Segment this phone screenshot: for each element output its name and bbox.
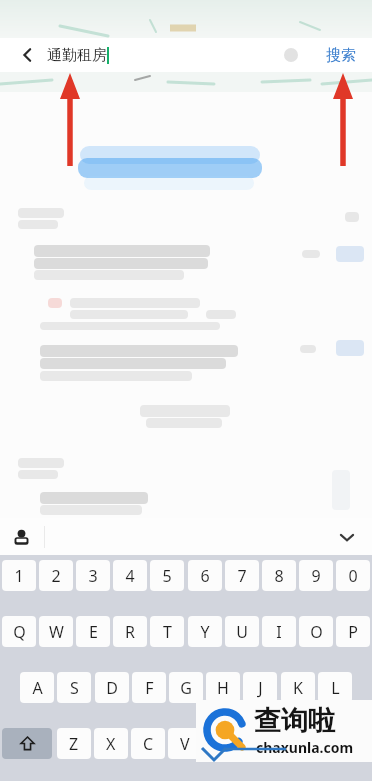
button[interactable]: 搜索 [322, 42, 360, 69]
button[interactable]: J [243, 672, 277, 703]
button[interactable]: R [113, 616, 147, 647]
button[interactable]: C [131, 728, 165, 759]
staticText: M [290, 733, 305, 755]
button[interactable]: B [205, 728, 239, 759]
button[interactable]: 7 [225, 560, 259, 591]
staticText: chaxunla.com [256, 738, 354, 757]
staticText: 0 [348, 565, 358, 587]
staticText: 通勤租房 [47, 46, 107, 65]
staticText: K [293, 677, 303, 699]
staticText: 7 [237, 565, 247, 587]
button[interactable]: 4 [113, 560, 147, 591]
button[interactable]: T [150, 616, 184, 647]
button[interactable]: L [318, 672, 352, 703]
button[interactable]: Back [14, 41, 42, 69]
staticText: 查询啦 [254, 704, 335, 738]
staticText: B [217, 733, 228, 755]
staticText: V [180, 733, 190, 755]
button[interactable]: 3 [76, 560, 110, 591]
button[interactable]: N [243, 728, 277, 759]
staticText: 9 [311, 565, 321, 587]
button[interactable]: M [280, 728, 314, 759]
button[interactable]: I [262, 616, 296, 647]
staticText: 5 [162, 565, 172, 587]
staticText: I [276, 621, 282, 643]
staticText: Y [200, 621, 210, 643]
button[interactable]: 9 [299, 560, 333, 591]
staticText: 4 [125, 565, 135, 587]
button[interactable]: Y [188, 616, 222, 647]
button[interactable]: Backspace [318, 728, 370, 759]
button[interactable]: V [168, 728, 202, 759]
staticText: G [180, 677, 192, 699]
button[interactable]: Shift [2, 728, 52, 759]
staticText: D [106, 677, 118, 699]
staticText: R [125, 621, 135, 643]
staticText: P [348, 621, 358, 643]
button[interactable]: 1 [2, 560, 36, 591]
staticText: N [254, 733, 267, 755]
staticText: W [49, 621, 64, 643]
staticText: 8 [274, 565, 284, 587]
staticText: 2 [51, 565, 61, 587]
staticText: X [106, 733, 116, 755]
staticText: 6 [200, 565, 210, 587]
staticText: C [143, 733, 154, 755]
button[interactable]: 8 [262, 560, 296, 591]
button[interactable]: G [169, 672, 203, 703]
staticText: U [236, 621, 248, 643]
button[interactable]: 2 [39, 560, 73, 591]
button[interactable]: 6 [188, 560, 222, 591]
button[interactable]: U [225, 616, 259, 647]
button[interactable]: D [95, 672, 129, 703]
button[interactable]: E [76, 616, 110, 647]
button[interactable]: Clear text [280, 44, 302, 66]
staticText: 搜索 [326, 46, 356, 65]
staticText: 1 [14, 565, 24, 587]
button[interactable]: W [39, 616, 73, 647]
button[interactable]: F [132, 672, 166, 703]
button[interactable]: Z [57, 728, 91, 759]
staticText: T [163, 621, 172, 643]
button[interactable]: O [299, 616, 333, 647]
staticText: E [89, 621, 98, 643]
button[interactable]: X [94, 728, 128, 759]
button[interactable]: K [281, 672, 315, 703]
button[interactable]: 0 [336, 560, 370, 591]
button[interactable]: Hide keyboard [332, 522, 362, 552]
button[interactable]: Switch input language [8, 524, 34, 550]
staticText: O [310, 621, 323, 643]
staticText: Q [13, 621, 26, 643]
button[interactable]: S [57, 672, 91, 703]
staticText: J [258, 677, 263, 699]
button[interactable]: 5 [150, 560, 184, 591]
staticText: L [331, 677, 340, 699]
staticText: A [32, 677, 43, 699]
button[interactable]: P [336, 616, 370, 647]
button[interactable]: Q [2, 616, 36, 647]
button[interactable]: A [20, 672, 54, 703]
staticText: Z [69, 733, 79, 755]
staticText: 3 [88, 565, 98, 587]
staticText: S [70, 677, 79, 699]
button[interactable]: H [206, 672, 240, 703]
staticText: F [145, 677, 154, 699]
staticText: H [217, 677, 229, 699]
